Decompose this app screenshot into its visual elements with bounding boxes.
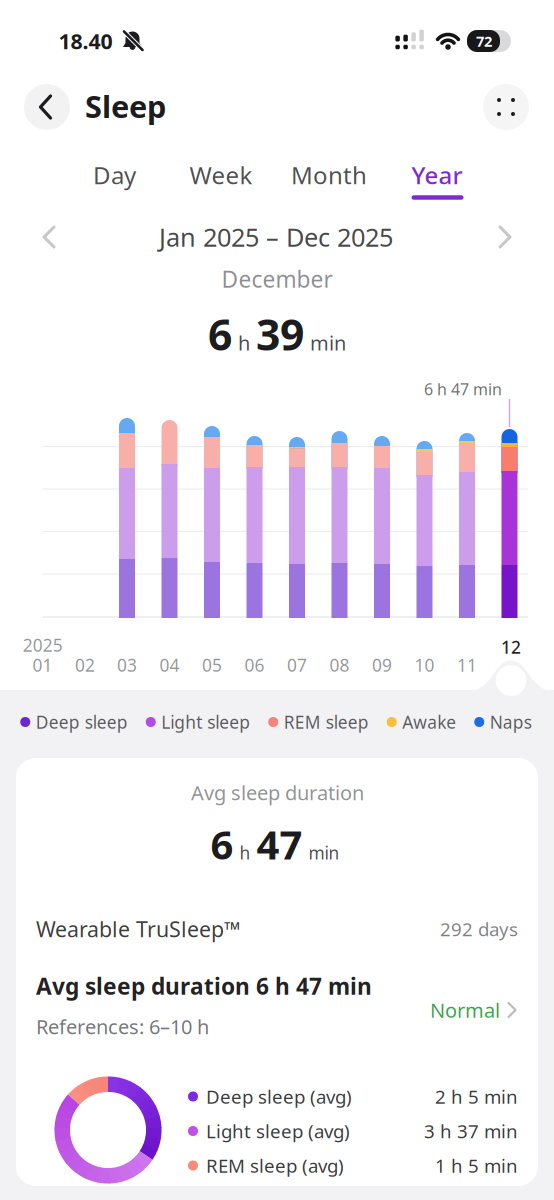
button[interactable]: Year [411, 159, 462, 191]
staticText: Light sleep [161, 710, 250, 733]
staticText: REM sleep [284, 710, 369, 733]
staticText: 47 [256, 817, 302, 870]
staticText: 07 [287, 653, 307, 676]
staticText: 12 [501, 635, 521, 658]
staticText: Wearable TruSleep™ [36, 915, 240, 943]
staticText: 6 h 47 min [424, 378, 502, 400]
staticText: Sleep [85, 86, 166, 126]
staticText: 6 [208, 306, 232, 362]
staticText: 2 h 5 min [435, 1084, 518, 1109]
button[interactable]: More [483, 84, 529, 130]
staticText: Week [189, 159, 252, 191]
staticText: Day [93, 159, 136, 191]
staticText: Naps [490, 710, 532, 733]
staticText: h [239, 841, 250, 864]
staticText: 04 [159, 653, 179, 676]
button[interactable]: Previous year [38, 223, 62, 251]
staticText: Deep sleep [36, 710, 128, 733]
staticText: Jan 2025 – Dec 2025 [159, 220, 393, 254]
staticText: Light sleep (avg) [206, 1119, 350, 1143]
staticText: Awake [402, 710, 456, 733]
button[interactable]: Next year [492, 223, 516, 251]
button[interactable]: Avg sleep duration 6 h 47 min [36, 966, 518, 1046]
staticText: 39 [256, 306, 304, 362]
staticText: h [238, 329, 250, 356]
staticText: min [310, 329, 346, 356]
button[interactable]: Week [189, 159, 252, 191]
staticText: Avg sleep duration [191, 779, 364, 806]
staticText: Month [291, 159, 367, 191]
staticText: 292 days [440, 917, 518, 941]
staticText: Deep sleep (avg) [206, 1084, 352, 1109]
staticText: 05 [202, 653, 222, 676]
button[interactable]: Day [93, 159, 136, 191]
staticText: 11 [457, 653, 477, 676]
staticText: 1 h 5 min [435, 1153, 518, 1178]
staticText: 09 [372, 653, 392, 676]
staticText: 02 [75, 653, 95, 676]
staticText: 18.40 [58, 27, 112, 55]
staticText: 01 [32, 653, 52, 676]
staticText: REM sleep (avg) [206, 1153, 344, 1178]
staticText: 2025 [23, 633, 63, 656]
button[interactable]: Month [291, 159, 367, 191]
staticText: 08 [329, 653, 349, 676]
staticText: References: 6–10 h [36, 1013, 209, 1040]
staticText: 6 [210, 817, 233, 870]
button[interactable]: Back [24, 84, 70, 130]
staticText: min [308, 841, 339, 864]
staticText: 06 [244, 653, 264, 676]
staticText: December [221, 264, 332, 294]
staticText: Year [411, 159, 462, 191]
staticText: 03 [117, 653, 137, 676]
staticText: 10 [414, 653, 434, 676]
staticText: Normal [430, 997, 500, 1023]
staticText: 72 [476, 31, 492, 51]
staticText: Avg sleep duration 6 h 47 min [36, 971, 372, 1001]
staticText: 3 h 37 min [424, 1119, 518, 1143]
